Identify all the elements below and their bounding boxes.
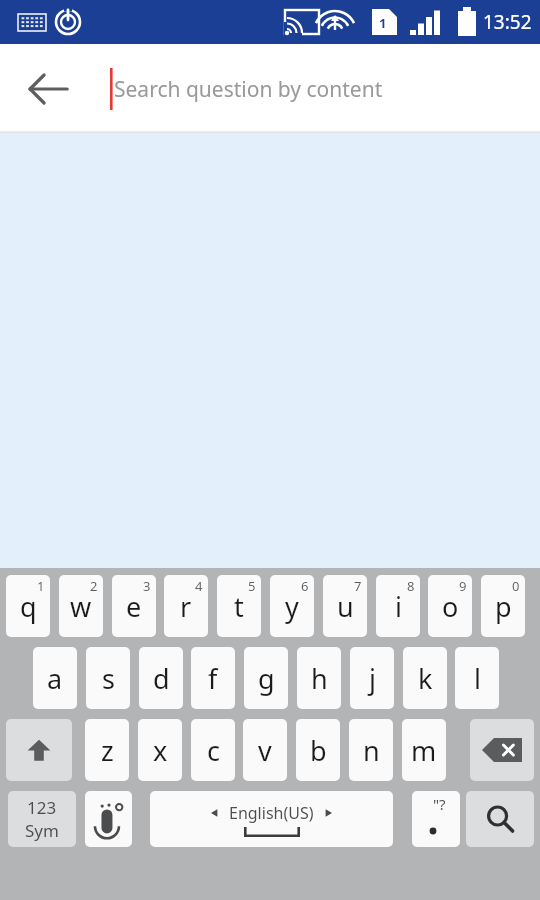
staticText: 3 [143,577,151,595]
button[interactable]: h [297,647,341,709]
staticText: z [101,732,114,769]
staticText: k [418,660,433,697]
button[interactable]: f [191,647,235,709]
button[interactable]: v [243,719,287,781]
button[interactable]: r [164,575,208,637]
button[interactable]: o [428,575,472,637]
button[interactable]: u [323,575,367,637]
button[interactable]: x [138,719,182,781]
staticText: u [337,588,354,625]
staticText: y [285,588,299,625]
button[interactable]: 123 [8,791,76,847]
button[interactable]: d [139,647,183,709]
staticText: h [311,660,328,697]
button[interactable]: e [112,575,156,637]
button[interactable]: b [296,719,340,781]
button[interactable]: k [403,647,447,709]
staticText: 5 [248,577,256,595]
staticText: 7 [354,577,362,595]
staticText: 0 [512,577,520,595]
staticText: Search question by content [114,75,383,104]
button[interactable]: Search [466,791,534,847]
button[interactable]: Search question by content [108,59,438,119]
button[interactable]: Voice input [85,791,132,847]
button[interactable]: Space [150,791,393,847]
button[interactable]: Shift [6,719,72,781]
staticText: 13:52 [483,9,532,35]
staticText: "? [433,794,446,814]
staticText: f [208,660,218,697]
button[interactable]: a [33,647,77,709]
staticText: g [258,660,275,697]
staticText: q [20,588,37,625]
button[interactable]: g [244,647,288,709]
staticText: t [234,588,244,625]
staticText: x [153,732,168,769]
button[interactable]: i [376,575,420,637]
button[interactable]: p [481,575,525,637]
staticText: c [207,732,220,769]
staticText: 8 [407,577,415,595]
button[interactable]: t [217,575,261,637]
button[interactable]: n [349,719,393,781]
button[interactable]: j [350,647,394,709]
staticText: Sym [25,819,59,842]
staticText: 123 [27,796,57,819]
staticText: m [411,732,437,769]
staticText: 2 [90,577,98,595]
button[interactable]: Backspace [470,719,534,781]
button[interactable]: "? [412,791,460,847]
staticText: a [47,660,63,697]
staticText: o [442,588,459,625]
staticText: i [395,588,402,625]
staticText: p [495,588,512,625]
staticText: 4 [195,577,203,595]
button[interactable]: m [402,719,446,781]
staticText: English(US) [229,802,314,824]
staticText: l [474,660,481,697]
staticText: d [153,660,170,697]
staticText: w [70,588,92,625]
staticText: 1 [379,14,387,32]
button[interactable]: c [191,719,235,781]
staticText: j [369,660,376,697]
button[interactable]: q [6,575,50,637]
staticText: 6 [301,577,309,595]
staticText: b [310,732,327,769]
button[interactable]: y [270,575,314,637]
staticText: s [102,660,115,697]
staticText: n [363,732,380,769]
button[interactable]: Navigate up [16,57,80,121]
staticText: v [258,732,272,769]
button[interactable]: s [86,647,130,709]
staticText: e [126,588,142,625]
staticText: 9 [459,577,467,595]
staticText: r [180,588,192,625]
button[interactable]: l [455,647,499,709]
button[interactable]: w [59,575,103,637]
button[interactable]: z [85,719,129,781]
staticText: 1 [37,577,45,595]
